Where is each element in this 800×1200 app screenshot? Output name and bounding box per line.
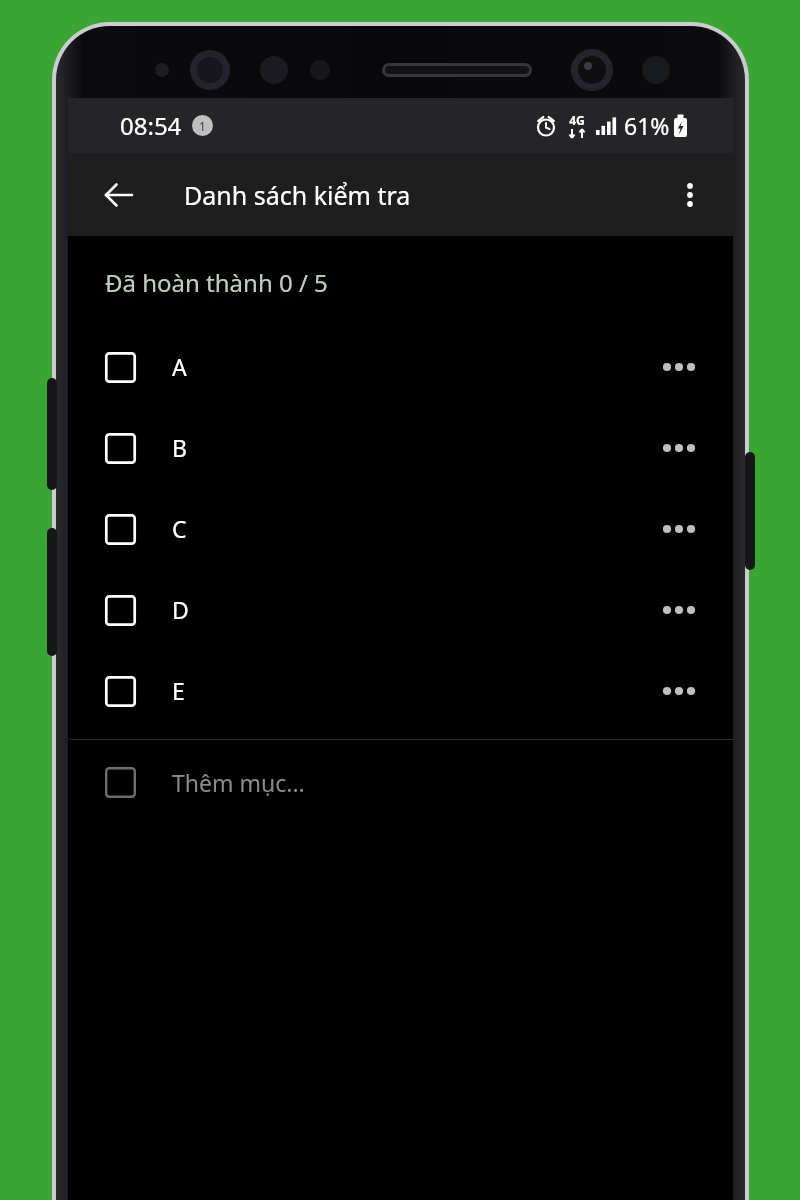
button[interactable]: Toggle E: [68, 650, 733, 731]
staticText: 08:54: [120, 109, 182, 142]
button[interactable]: Toggle C: [94, 503, 146, 555]
staticText: 4G: [569, 112, 585, 128]
button[interactable]: Item options: [651, 501, 707, 557]
staticText: B: [172, 432, 187, 463]
button[interactable]: More options: [661, 166, 719, 224]
staticText: 1: [199, 118, 206, 134]
staticText: Đã hoàn thành 0 / 5: [105, 266, 328, 299]
button[interactable]: Toggle E: [94, 665, 146, 717]
staticText: 61%: [624, 110, 670, 141]
button[interactable]: Item options: [651, 420, 707, 476]
button[interactable]: Toggle A: [68, 326, 733, 407]
staticText: D: [172, 594, 189, 625]
staticText: Danh sách kiểm tra: [184, 178, 411, 212]
button[interactable]: Item options: [651, 339, 707, 395]
button[interactable]: Thêm mục...: [68, 740, 733, 824]
button[interactable]: Toggle D: [68, 569, 733, 650]
button[interactable]: Toggle B: [68, 407, 733, 488]
button[interactable]: Toggle C: [68, 488, 733, 569]
button[interactable]: Item options: [651, 582, 707, 638]
button[interactable]: Toggle D: [94, 584, 146, 636]
staticText: A: [172, 351, 187, 382]
staticText: E: [172, 675, 185, 706]
staticText: Thêm mục...: [172, 767, 305, 798]
button[interactable]: Toggle B: [94, 422, 146, 474]
staticText: C: [172, 513, 187, 544]
button[interactable]: Toggle A: [94, 341, 146, 393]
button[interactable]: Back: [88, 164, 150, 226]
button[interactable]: Item options: [651, 663, 707, 719]
